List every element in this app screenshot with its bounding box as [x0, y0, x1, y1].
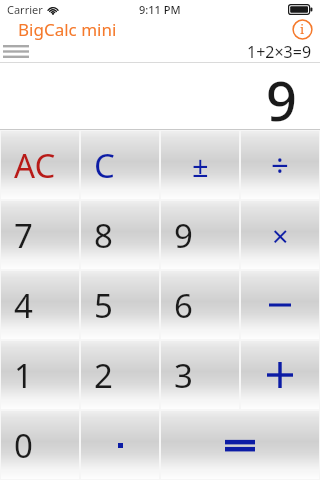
button[interactable]: Info	[292, 19, 313, 40]
button[interactable]: 4	[1, 271, 79, 339]
staticText: BigCalc mini	[18, 18, 117, 40]
staticText: ×	[272, 216, 289, 255]
button[interactable]: 1	[1, 341, 79, 409]
staticText: 1	[14, 353, 33, 398]
button[interactable]: 2	[81, 341, 159, 409]
staticText: 0	[14, 423, 33, 468]
staticText: 6	[174, 283, 193, 328]
button[interactable]: Minus	[241, 271, 319, 339]
staticText: 8	[94, 213, 113, 258]
button[interactable]: 3	[161, 341, 239, 409]
button[interactable]: 5	[81, 271, 159, 339]
button[interactable]: Multiply	[241, 201, 319, 269]
button[interactable]: Equals	[161, 411, 319, 479]
staticText: 2	[94, 353, 113, 398]
staticText: Carrier	[7, 2, 43, 17]
button[interactable]: AC	[1, 131, 79, 199]
button[interactable]: 6	[161, 271, 239, 339]
button[interactable]: 7	[1, 201, 79, 269]
button[interactable]: 9	[161, 201, 239, 269]
button[interactable]: C	[81, 131, 159, 199]
staticText: 9	[266, 63, 297, 130]
staticText: ±	[192, 146, 209, 185]
staticText: 7	[14, 213, 33, 258]
button[interactable]: Toggle sign	[161, 131, 239, 199]
button[interactable]: 0	[1, 411, 79, 479]
staticText: 1+2×3=9	[247, 41, 312, 63]
button[interactable]: 8	[81, 201, 159, 269]
button[interactable]: Divide	[241, 131, 319, 199]
staticText: 9	[174, 213, 193, 258]
staticText: 3	[174, 353, 193, 398]
button[interactable]: Decimal point	[81, 411, 159, 479]
button[interactable]: Plus	[241, 341, 319, 409]
staticText: AC	[14, 143, 56, 188]
staticText: C	[94, 143, 115, 188]
staticText: i	[300, 20, 305, 38]
staticText: ÷	[271, 144, 289, 186]
staticText: 4	[14, 283, 33, 328]
staticText: 5	[94, 283, 113, 328]
staticText: 9:11 PM	[139, 2, 181, 17]
